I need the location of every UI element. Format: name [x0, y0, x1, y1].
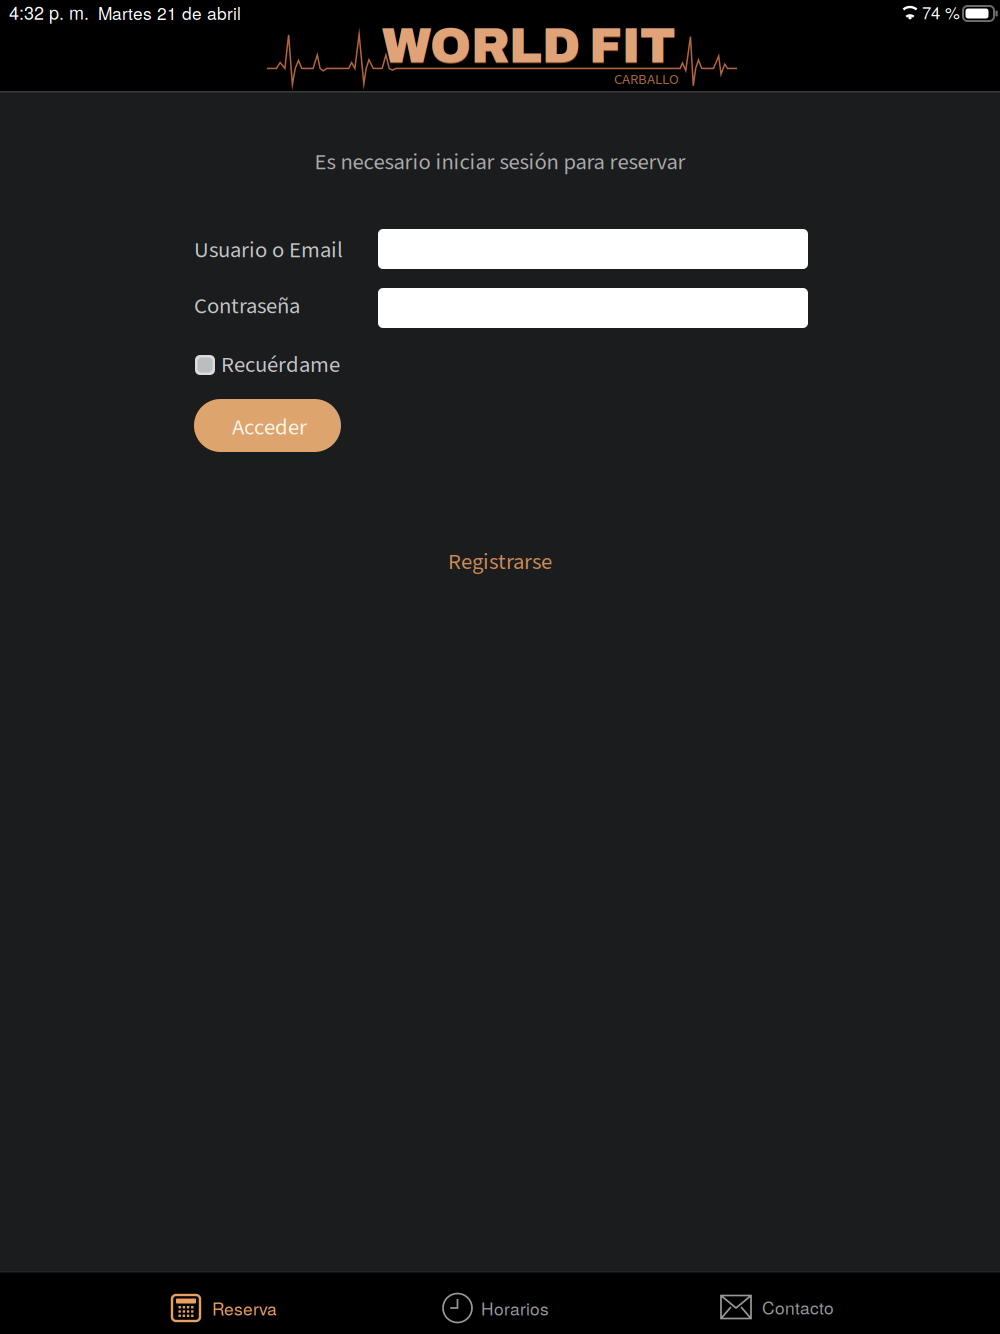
staticText: Es necesario iniciar sesión para reserva…	[314, 146, 685, 178]
staticText: Horarios	[481, 1296, 549, 1320]
staticText: Contacto	[762, 1295, 834, 1319]
staticText: Acceder	[232, 411, 307, 444]
button[interactable]: Recuérdame	[195, 352, 341, 378]
button[interactable]: Acceder	[194, 399, 341, 452]
staticText: Reserva	[212, 1296, 277, 1320]
staticText: Registrarse	[448, 546, 552, 578]
staticText: 4:32 p. m.	[9, 0, 89, 25]
staticText: CARBALLO	[614, 69, 679, 90]
staticText: WORLD FIT	[382, 19, 676, 73]
staticText: Recuérdame	[221, 349, 340, 381]
staticText: Martes 21 de abril	[98, 0, 241, 25]
staticText: 74 %	[922, 0, 960, 24]
button[interactable]: Contacto	[721, 1287, 837, 1327]
staticText: WORLD FIT	[382, 20, 676, 74]
button[interactable]: Reserva	[172, 1288, 334, 1328]
staticText: Usuario o Email	[194, 234, 343, 266]
button[interactable]: Horarios	[443, 1288, 553, 1328]
staticText: Contraseña	[194, 290, 300, 322]
button[interactable]: Registrarse	[0, 549, 1000, 575]
